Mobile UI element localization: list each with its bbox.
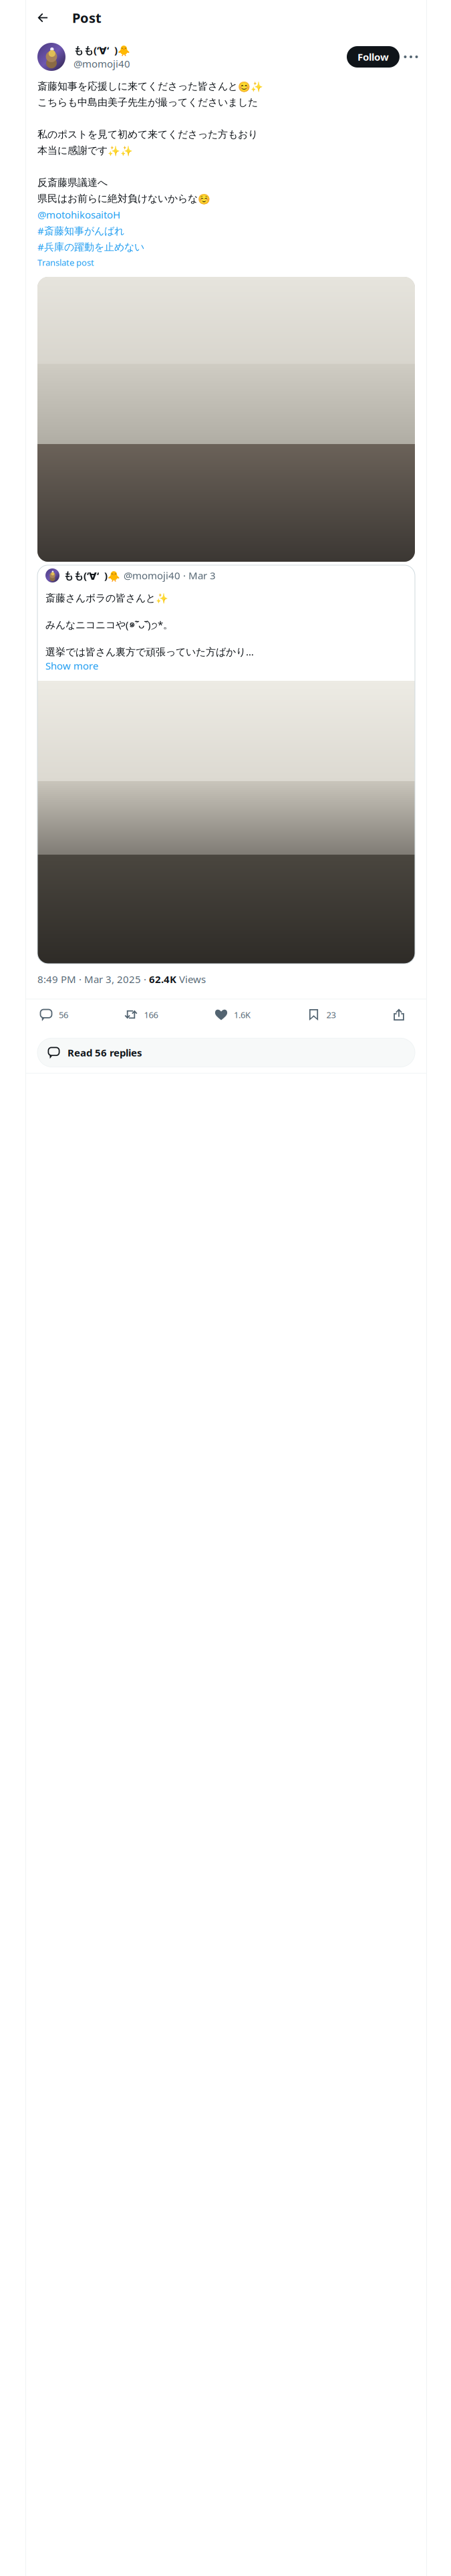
staticText: 県民はお前らに絶対負けないからな☺️ <box>37 192 210 205</box>
staticText: みんなニコニコや(๑˃̵ᴗ˂̵)੭*。 <box>45 616 173 632</box>
staticText: #兵庫の躍動を止めない <box>37 240 144 254</box>
staticText: Translate post <box>37 257 94 268</box>
staticText: こちらも中島由美子先生が撮ってくださいました <box>37 96 258 109</box>
button[interactable]: Translate post <box>37 256 94 269</box>
staticText: 斎藤知事を応援しに来てくださった皆さんと😊✨ <box>37 80 263 93</box>
button[interactable]: Bookmark <box>306 1007 336 1022</box>
staticText: 選挙では皆さん裏方で頑張っていた方ばかり… <box>45 645 254 659</box>
button[interactable]: Share <box>392 1007 406 1022</box>
button[interactable]: Read 56 replies <box>37 1038 415 1067</box>
staticText: Follow <box>357 50 389 64</box>
staticText: Show more <box>45 659 98 673</box>
staticText: 23 <box>326 1009 336 1021</box>
button[interactable]: もも(‘∀‘ )🐥 <box>37 565 415 964</box>
staticText: @motohikosaitoH <box>37 208 120 221</box>
staticText: 1.6K <box>234 1009 251 1021</box>
staticText: @momoji40 <box>73 57 130 70</box>
staticText: 斎藤さんボラの皆さんと✨ <box>45 592 168 605</box>
staticText: 62.4K <box>149 972 176 986</box>
staticText: Post <box>72 9 102 27</box>
staticText: 私のポストを見て初めて来てくださった方もおり <box>37 128 258 141</box>
button[interactable]: Follow <box>347 46 400 68</box>
staticText: 8:49 PM · Mar 3, 2025 · <box>37 972 149 986</box>
staticText: Views <box>176 972 206 986</box>
staticText: 166 <box>144 1009 158 1021</box>
button[interactable]: Like <box>214 1007 251 1022</box>
staticText: 反斎藤県議達へ <box>37 176 108 189</box>
button[interactable]: More <box>400 45 422 68</box>
staticText: もも(‘∀‘ )🐥 <box>73 43 130 57</box>
staticText: 56 <box>59 1009 68 1021</box>
staticText: もも(‘∀‘ )🐥 <box>63 569 120 582</box>
button[interactable]: Reply <box>39 1007 68 1022</box>
button[interactable]: Back <box>31 6 54 29</box>
button[interactable]: Repost <box>124 1007 158 1022</box>
staticText: @momoji40 · Mar 3 <box>124 569 216 582</box>
staticText: Read 56 replies <box>67 1046 142 1059</box>
staticText: 本当に感謝です✨✨ <box>37 144 133 157</box>
staticText: #斎藤知事がんばれ <box>37 224 124 238</box>
